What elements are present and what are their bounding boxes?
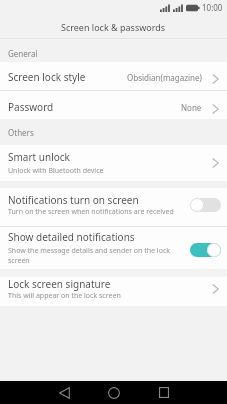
button[interactable]: [139, 381, 189, 404]
staticText: Others: [8, 127, 34, 138]
staticText: None: [181, 102, 202, 113]
staticText: Turn on the screen when notifications ar…: [8, 207, 174, 217]
staticText: Notifications turn on screen: [8, 193, 139, 207]
button[interactable]: [39, 381, 89, 404]
staticText: Screen lock & passwords: [61, 21, 166, 33]
staticText: Show detailed notifications: [8, 230, 135, 244]
button[interactable]: Show detailed notifications: [0, 227, 227, 269]
staticText: Screen lock style: [8, 70, 86, 84]
staticText: This will appear on the lock screen: [8, 291, 121, 301]
staticText: General: [8, 48, 38, 59]
button[interactable]: Notifications turn on screen: [0, 188, 227, 226]
staticText: Unlock with Bluetooth device: [8, 166, 104, 176]
staticText: Lock screen signature: [8, 277, 111, 291]
staticText: Obsidian(magazine): [127, 72, 202, 83]
button[interactable]: Smart unlock: [0, 145, 227, 181]
staticText: Smart unlock: [8, 150, 70, 164]
button[interactable]: [190, 198, 221, 212]
staticText: Show the message details and sender on t…: [8, 246, 186, 266]
staticText: 10:00: [202, 2, 223, 13]
button[interactable]: Screen lock style: [0, 62, 227, 90]
staticText: Password: [8, 100, 54, 114]
button[interactable]: [89, 381, 139, 404]
button[interactable]: Password: [0, 91, 227, 119]
button[interactable]: Lock screen signature: [0, 277, 227, 306]
button[interactable]: [190, 243, 221, 257]
